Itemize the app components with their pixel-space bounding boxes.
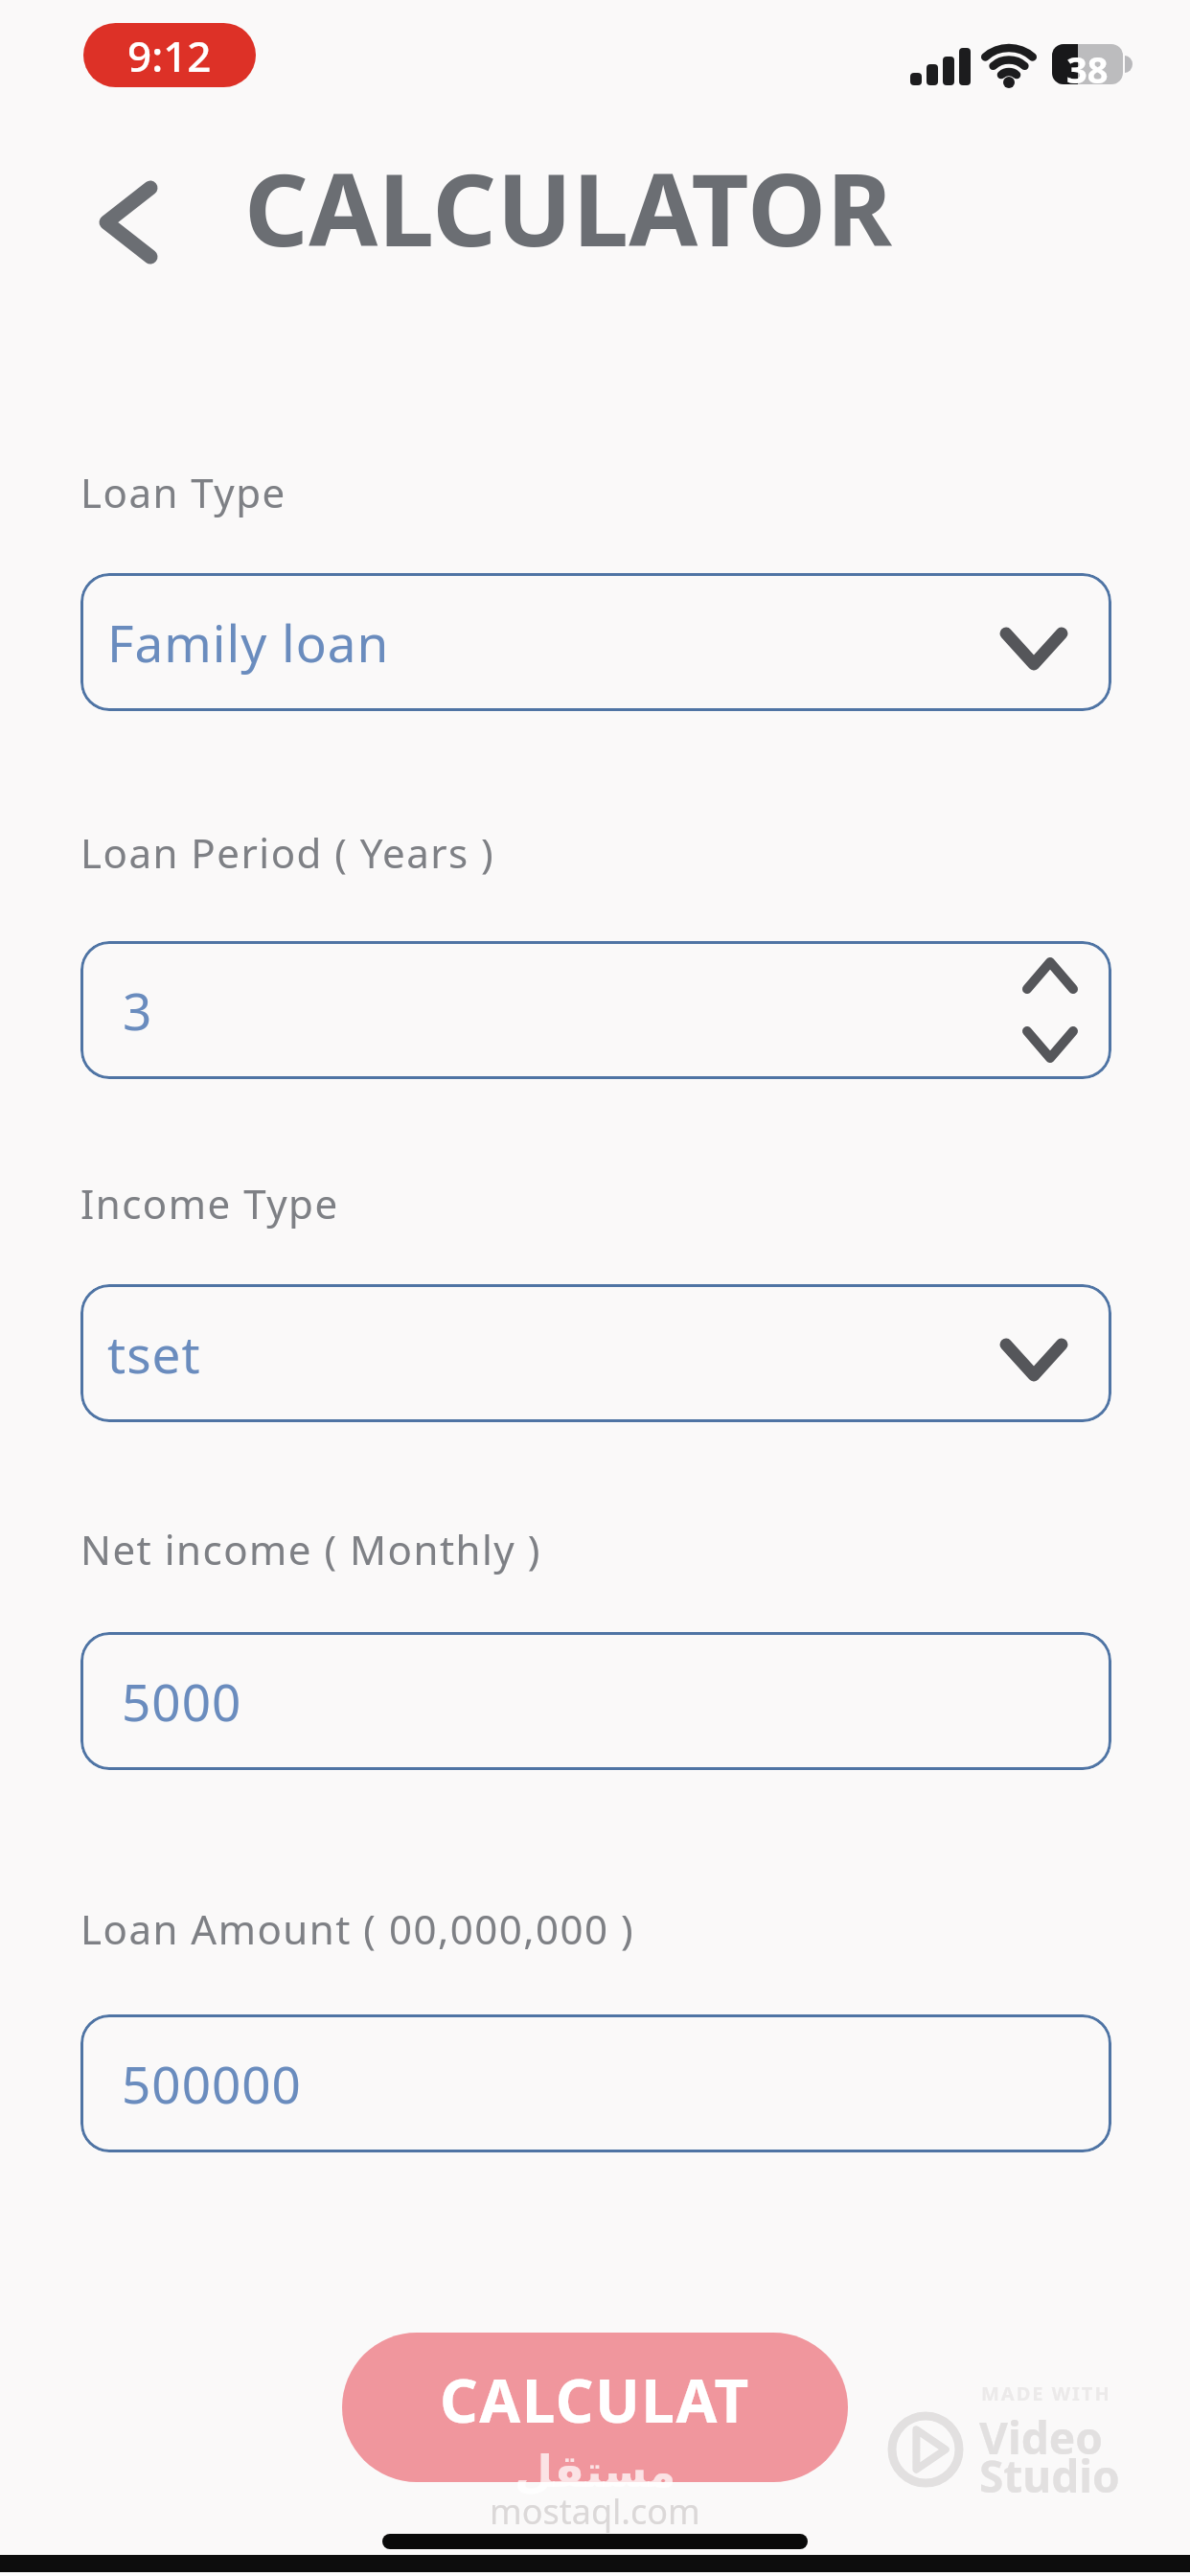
staticText: Video	[979, 2407, 1103, 2468]
staticText: 3	[123, 976, 153, 1045]
button[interactable]: CALCULAT	[342, 2333, 848, 2482]
staticText: Family loan	[107, 608, 390, 677]
staticText: 38	[1066, 44, 1109, 84]
staticText: Net income ( Monthly )	[80, 1522, 541, 1576]
staticText: mostaql.com	[490, 2488, 700, 2535]
staticText: Loan Period ( Years )	[80, 825, 495, 880]
staticText: 500000	[122, 2049, 302, 2118]
button[interactable]: 500000	[80, 2014, 1111, 2152]
button[interactable]: Family loan	[80, 573, 1111, 711]
button[interactable]	[106, 188, 150, 257]
staticText: مستقل	[515, 2446, 676, 2497]
staticText: MADE WITH	[981, 2380, 1111, 2406]
button[interactable]: 5000	[80, 1632, 1111, 1770]
staticText: Loan Type	[80, 465, 286, 519]
button[interactable]: 3	[80, 941, 1111, 1079]
staticText: Loan Amount ( 00,000,000 )	[80, 1901, 635, 1956]
staticText: CALCULAT	[440, 2359, 750, 2440]
staticText: 5000	[122, 1667, 242, 1736]
button[interactable]: tset	[80, 1284, 1111, 1422]
staticText: 9:12	[127, 27, 212, 84]
staticText: tset	[107, 1319, 201, 1388]
staticText: CALCULATOR	[244, 140, 893, 276]
staticText: Income Type	[80, 1176, 339, 1230]
staticText: Studio	[979, 2446, 1120, 2506]
